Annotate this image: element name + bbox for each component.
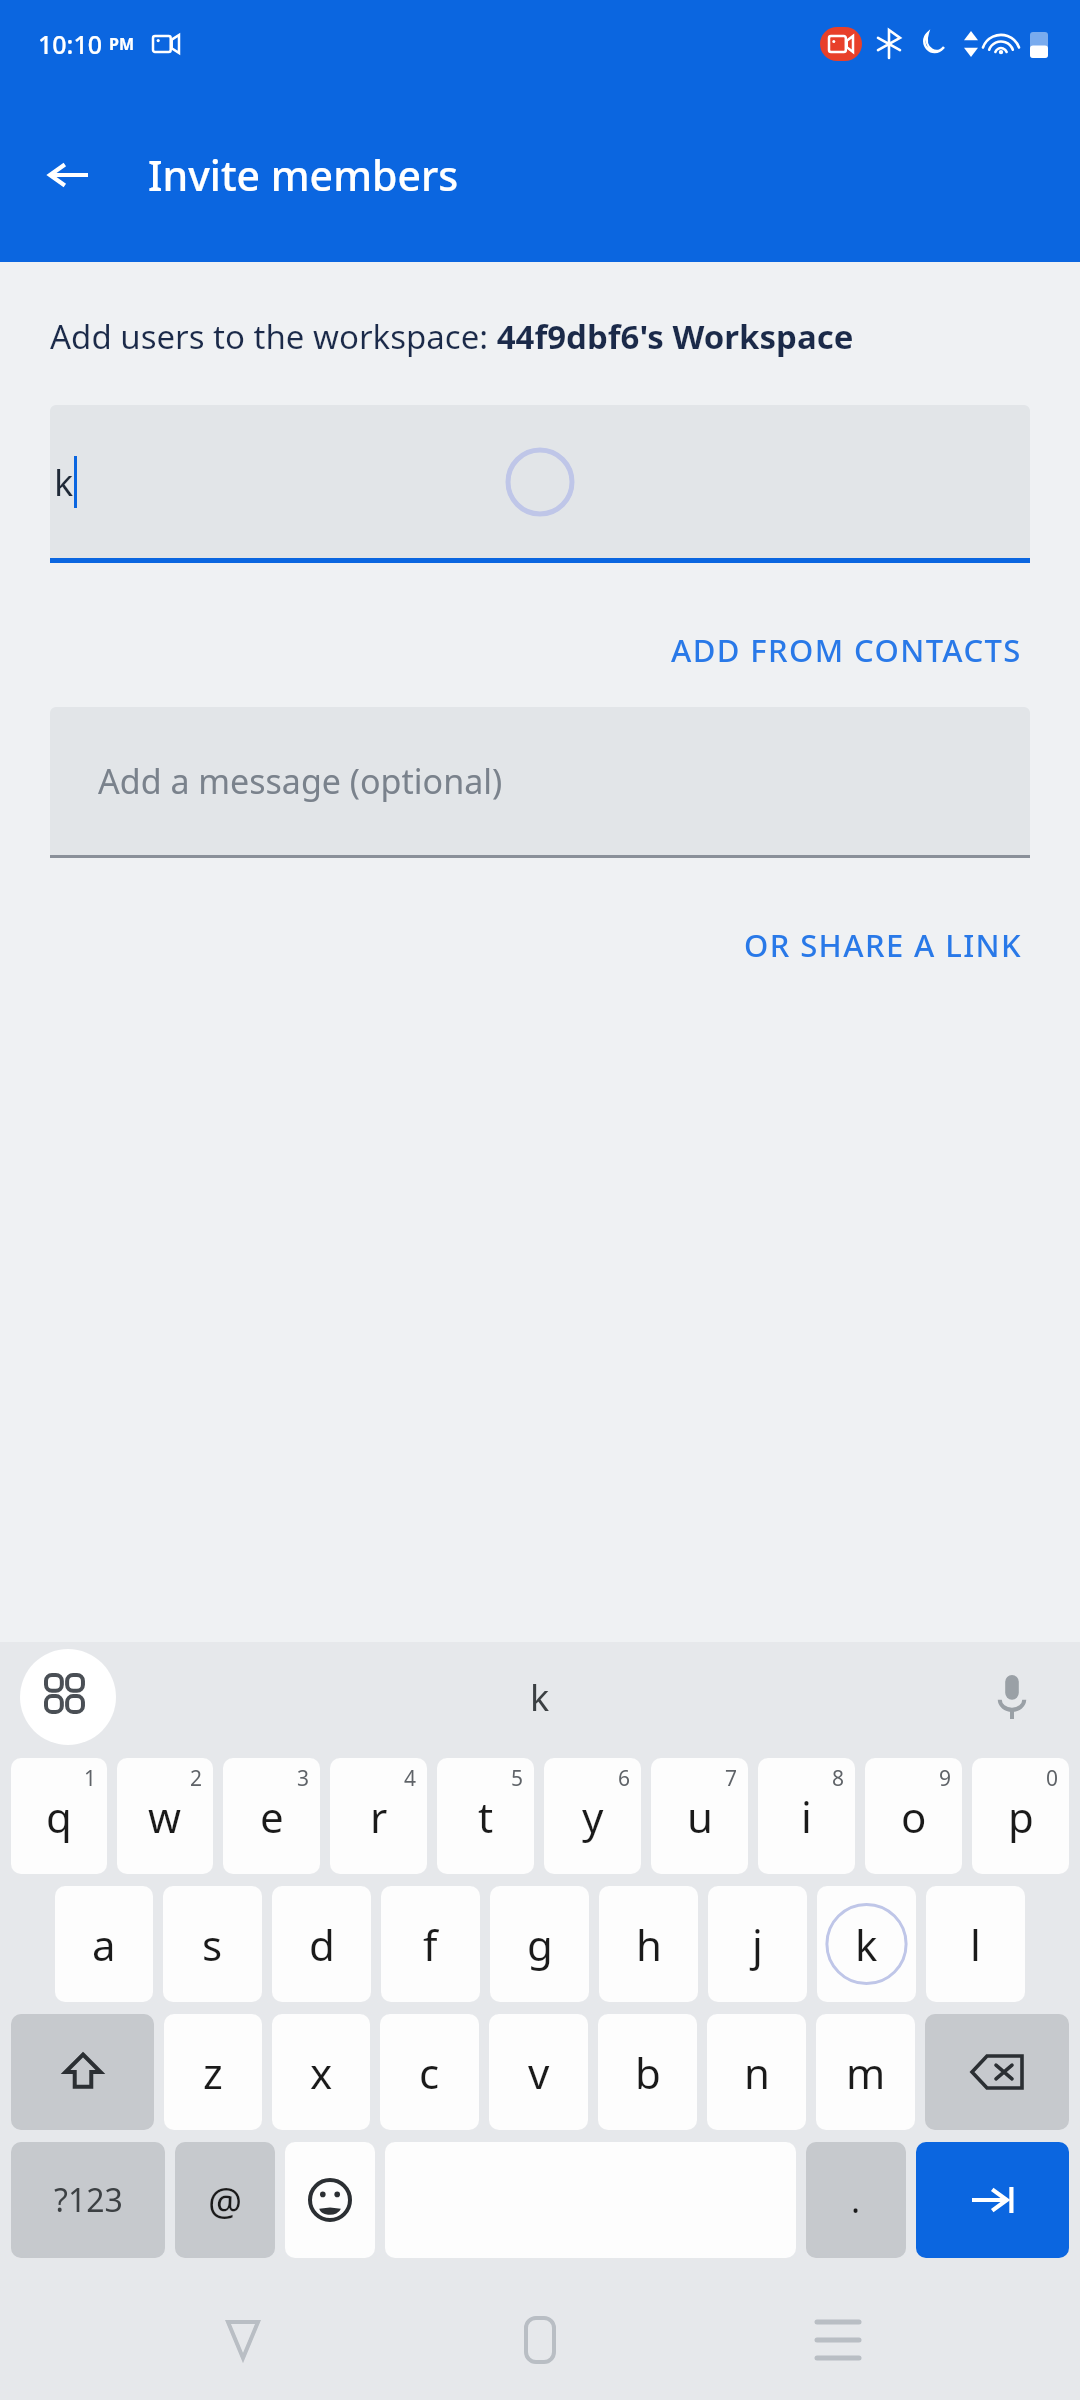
button[interactable]: f xyxy=(381,1886,480,2002)
staticText: n xyxy=(744,2044,770,2101)
button[interactable]: Voice input xyxy=(972,1657,1052,1737)
staticText: k xyxy=(855,1916,878,1973)
button[interactable]: a xyxy=(55,1886,153,2002)
staticText: s xyxy=(202,1916,223,1973)
button[interactable]: u xyxy=(651,1758,748,1874)
staticText: ?123 xyxy=(54,2178,123,2222)
button[interactable]: Shift xyxy=(11,2014,154,2130)
staticText: . xyxy=(851,2177,861,2223)
button[interactable]: w xyxy=(117,1758,213,1874)
button[interactable]: v xyxy=(489,2014,588,2130)
staticText: 3 xyxy=(297,1764,310,1793)
button[interactable]: ?123 xyxy=(11,2142,165,2258)
button[interactable]: Next xyxy=(916,2142,1069,2258)
button[interactable]: Home xyxy=(485,2285,595,2395)
button[interactable]: t xyxy=(437,1758,534,1874)
staticText: k xyxy=(530,1673,550,1722)
staticText: 7 xyxy=(725,1764,738,1793)
staticText: @ xyxy=(208,2174,243,2226)
staticText: Add users to the workspace: 44f9dbf6's W… xyxy=(50,314,854,359)
button[interactable]: ADD FROM CONTACTS xyxy=(663,619,1030,681)
button[interactable]: Emoji xyxy=(285,2142,375,2258)
staticText: b xyxy=(635,2044,661,2101)
staticText: z xyxy=(203,2044,223,2101)
staticText: u xyxy=(687,1788,713,1845)
button[interactable]: z xyxy=(164,2014,262,2130)
staticText: w xyxy=(148,1788,182,1845)
staticText: o xyxy=(901,1788,927,1845)
button[interactable]: l xyxy=(926,1886,1025,2002)
button[interactable]: o xyxy=(865,1758,962,1874)
button[interactable]: n xyxy=(707,2014,806,2130)
staticText: 2 xyxy=(190,1764,203,1793)
button[interactable]: p xyxy=(972,1758,1069,1874)
button[interactable]: c xyxy=(380,2014,479,2130)
staticText: a xyxy=(92,1916,116,1973)
button[interactable]: k xyxy=(817,1886,916,2002)
staticText: Invite members xyxy=(148,147,459,203)
staticText: PM xyxy=(109,33,135,55)
button[interactable]: y xyxy=(544,1758,641,1874)
staticText: c xyxy=(419,2044,440,2101)
staticText: f xyxy=(423,1916,438,1973)
staticText: q xyxy=(46,1788,72,1845)
button[interactable]: @ xyxy=(175,2142,275,2258)
staticText: 5 xyxy=(511,1764,524,1793)
button[interactable]: k xyxy=(500,1665,580,1730)
button[interactable]: i xyxy=(758,1758,855,1874)
staticText: 1 xyxy=(84,1764,97,1793)
staticText: e xyxy=(260,1788,284,1845)
staticText: d xyxy=(309,1916,335,1973)
button[interactable]: j xyxy=(708,1886,807,2002)
staticText: i xyxy=(801,1788,812,1845)
button[interactable]: m xyxy=(816,2014,915,2130)
staticText: m xyxy=(846,2044,886,2101)
staticText: Add a message (optional) xyxy=(98,758,503,804)
staticText: y xyxy=(582,1788,604,1845)
button[interactable]: q xyxy=(11,1758,107,1874)
button[interactable]: b xyxy=(598,2014,697,2130)
staticText: t xyxy=(478,1788,494,1845)
staticText: j xyxy=(752,1916,763,1973)
staticText: ADD FROM CONTACTS xyxy=(671,629,1022,671)
staticText: l xyxy=(970,1916,981,1973)
staticText: h xyxy=(636,1916,662,1973)
button[interactable]: h xyxy=(599,1886,698,2002)
button[interactable]: r xyxy=(330,1758,427,1874)
button[interactable]: s xyxy=(163,1886,262,2002)
staticText: g xyxy=(527,1916,553,1973)
staticText: 10:10 xyxy=(38,27,103,61)
button[interactable]: Keyboard options xyxy=(20,1649,116,1745)
staticText: 8 xyxy=(832,1764,845,1793)
staticText: p xyxy=(1008,1788,1034,1845)
button[interactable]: d xyxy=(272,1886,371,2002)
button[interactable]: Add a message (optional) xyxy=(50,707,1030,855)
staticText: 6 xyxy=(618,1764,631,1793)
button[interactable]: OR SHARE A LINK xyxy=(736,914,1030,976)
staticText: r xyxy=(370,1788,388,1845)
button[interactable]: x xyxy=(272,2014,370,2130)
button[interactable]: Back xyxy=(28,134,110,216)
button[interactable]: g xyxy=(490,1886,589,2002)
staticText: 4 xyxy=(404,1764,417,1793)
staticText: 9 xyxy=(939,1764,952,1793)
button[interactable]: Recents xyxy=(783,2285,893,2395)
button[interactable]: Backspace xyxy=(925,2014,1069,2130)
staticText: 0 xyxy=(1046,1764,1059,1793)
button[interactable]: Back xyxy=(188,2285,298,2395)
button[interactable]: k xyxy=(50,405,1030,558)
staticText: k xyxy=(54,458,74,507)
button[interactable]: e xyxy=(223,1758,320,1874)
button[interactable]: . xyxy=(806,2142,906,2258)
staticText: v xyxy=(528,2044,550,2101)
staticText: x xyxy=(310,2044,333,2101)
staticText: OR SHARE A LINK xyxy=(744,924,1022,966)
